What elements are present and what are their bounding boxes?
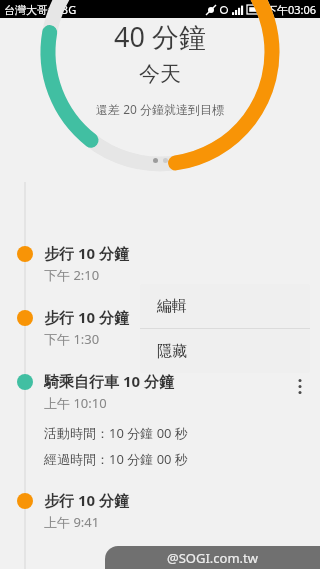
staticText: 還差 20 分鐘就達到目標 bbox=[96, 101, 224, 117]
staticText: 上午 9:41 bbox=[44, 513, 100, 531]
staticText: 活動時間：10 分鐘 00 秒 bbox=[44, 424, 188, 442]
staticText: 騎乘自行車 10 分鐘 bbox=[44, 371, 174, 391]
staticText: 今天 bbox=[139, 61, 181, 87]
button[interactable]: 編輯 bbox=[140, 284, 310, 328]
staticText: 步行 10 分鐘 bbox=[44, 307, 129, 327]
staticText: 步行 10 分鐘 bbox=[44, 243, 129, 263]
staticText: 上午 10:10 bbox=[44, 394, 107, 412]
button[interactable]: 騎乘自行車 10 分鐘 bbox=[0, 371, 320, 468]
button[interactable]: 步行 10 分鐘 bbox=[0, 307, 320, 348]
staticText: 步行 10 分鐘 bbox=[44, 490, 129, 510]
staticText: 下午03:06 bbox=[266, 2, 317, 17]
button[interactable]: More options bbox=[285, 371, 315, 401]
staticText: 下午 2:10 bbox=[44, 266, 100, 284]
staticText: 編輯 bbox=[157, 297, 187, 316]
staticText: 經過時間：10 分鐘 00 秒 bbox=[44, 450, 188, 468]
staticText: 40 分鐘 bbox=[114, 18, 206, 55]
button[interactable]: 步行 10 分鐘 bbox=[0, 243, 320, 284]
staticText: 隱藏 bbox=[157, 342, 187, 361]
button[interactable]: 步行 10 分鐘 bbox=[0, 490, 320, 531]
staticText: 下午 1:30 bbox=[44, 330, 100, 348]
staticText: 台灣大哥大 3G bbox=[4, 2, 77, 17]
staticText: @SOGI.com.tw bbox=[167, 549, 258, 567]
button[interactable]: 隱藏 bbox=[140, 329, 310, 373]
